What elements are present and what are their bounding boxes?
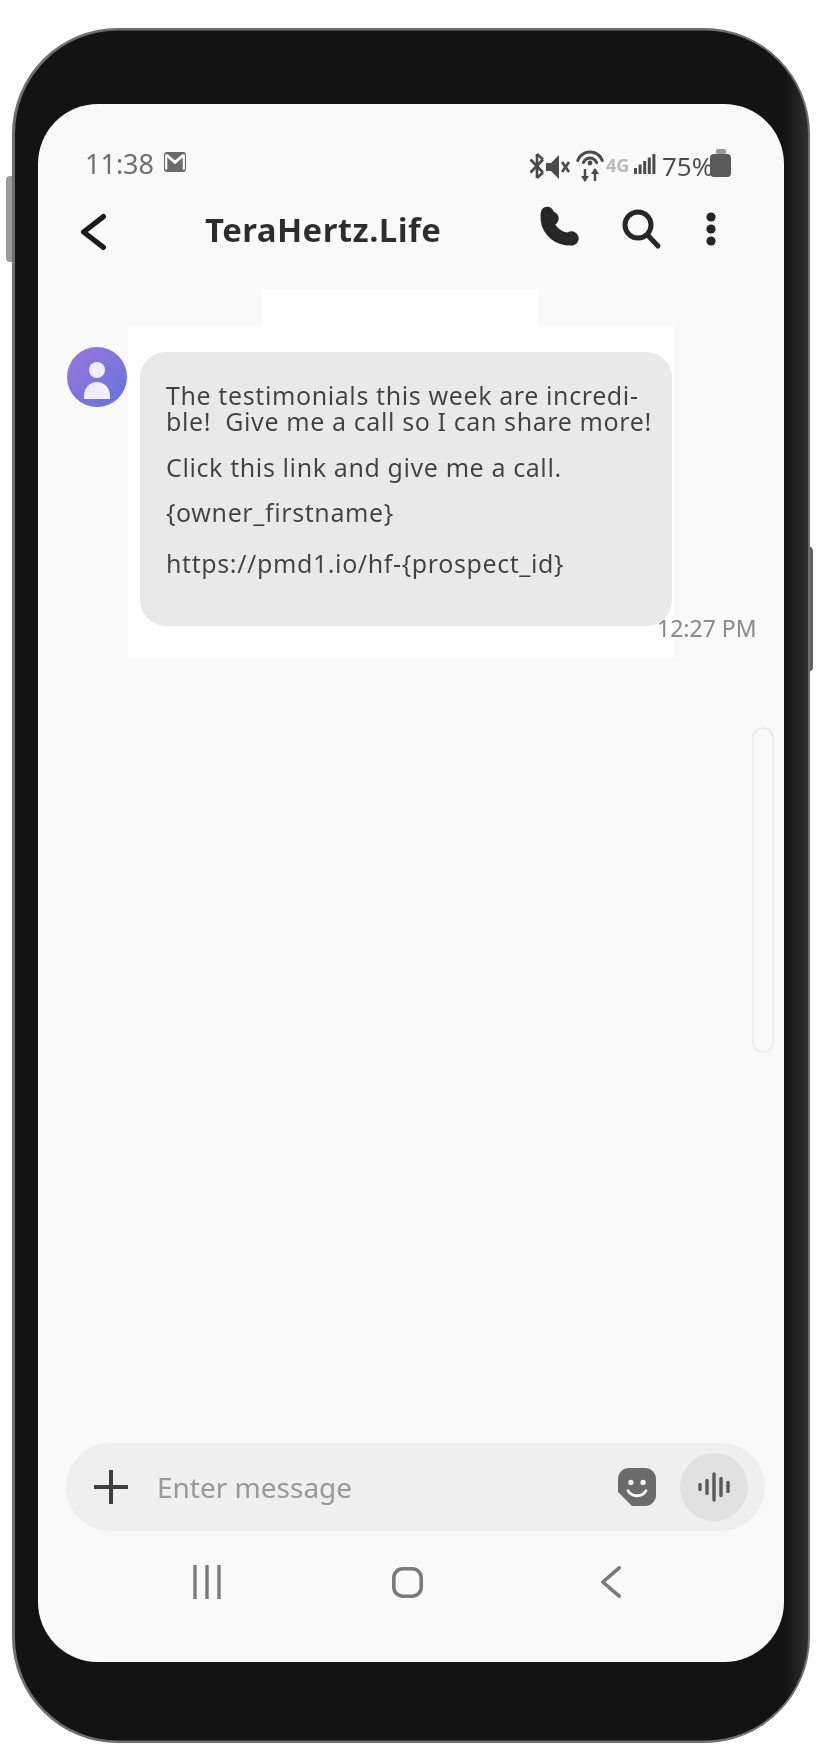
button[interactable]: Enter message <box>66 1443 765 1531</box>
button[interactable] <box>680 1453 748 1521</box>
staticText: The testimonials this week are incredi- <box>166 378 639 412</box>
button[interactable] <box>162 1542 252 1622</box>
button[interactable] <box>67 347 127 407</box>
staticText: TeraHertz.Life <box>205 207 442 252</box>
staticText: 4G <box>606 153 630 178</box>
staticText: ble! Give me a call so I can share more! <box>166 404 652 438</box>
staticText: {owner_firstname} <box>166 495 394 529</box>
button[interactable]: TeraHertz.Life <box>173 204 473 254</box>
staticText: Click this link and give me a call. <box>166 450 562 484</box>
staticText: Enter message <box>157 1468 353 1506</box>
staticText: 12:27 PM <box>657 612 757 640</box>
button[interactable] <box>532 200 590 258</box>
button[interactable] <box>612 200 670 258</box>
staticText: 75% <box>662 148 714 183</box>
button[interactable] <box>686 200 736 258</box>
button[interactable] <box>140 352 672 626</box>
button[interactable] <box>65 204 121 260</box>
button[interactable] <box>566 1542 656 1622</box>
staticText: 11:38 <box>85 145 155 182</box>
button[interactable] <box>362 1542 452 1622</box>
staticText: https://pmd1.io/hf-{prospect_id} <box>166 546 565 580</box>
